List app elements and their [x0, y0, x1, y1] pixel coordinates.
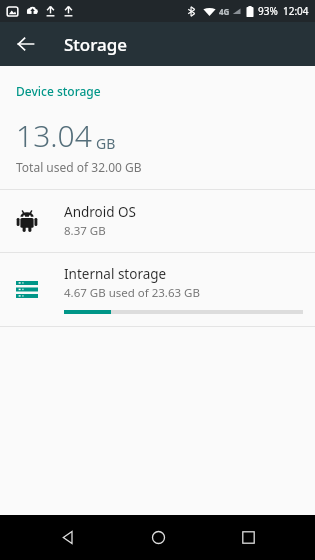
staticText: Internal storage [64, 265, 167, 283]
button[interactable]: Android OS [0, 190, 315, 252]
staticText: Total used of 32.00 GB [16, 159, 142, 175]
staticText: 93% [258, 4, 278, 18]
staticText: 12:04 [283, 4, 309, 18]
staticText: Device storage [16, 83, 101, 99]
button[interactable]: Recent apps [224, 515, 272, 560]
button[interactable]: Home [134, 515, 182, 560]
staticText: 8.37 GB [64, 223, 106, 239]
button[interactable]: Internal storage [0, 253, 315, 326]
staticText: 4G [219, 6, 230, 17]
staticText: Android OS [64, 203, 136, 221]
staticText: GB [96, 134, 116, 153]
staticText: Storage [64, 33, 128, 56]
staticText: 13.04 [16, 115, 92, 156]
staticText: 4.67 GB used of 23.63 GB [64, 285, 200, 301]
button[interactable]: Back [43, 515, 91, 560]
button[interactable]: Navigate up [9, 27, 43, 61]
